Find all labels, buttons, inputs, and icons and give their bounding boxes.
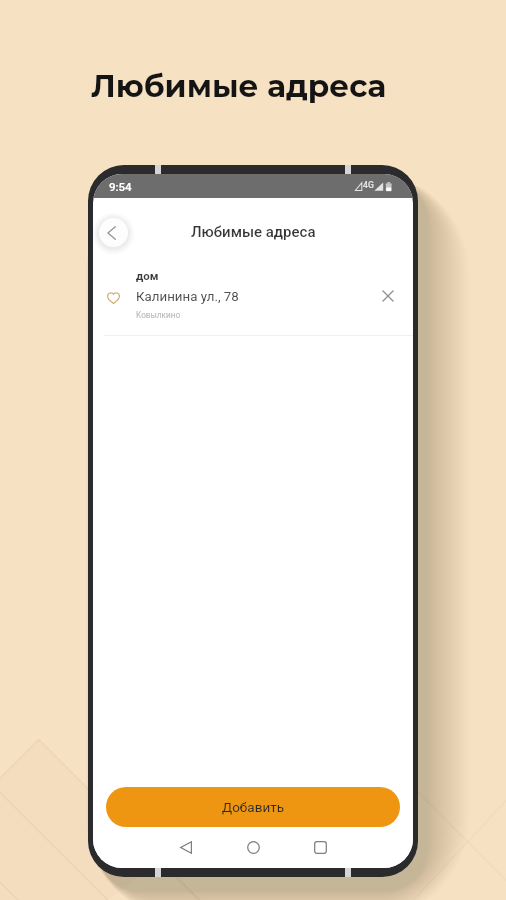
staticText: Калинина ул., 78 [136, 289, 239, 305]
staticText: 4G [363, 180, 374, 190]
staticText: Ковылкино [136, 310, 181, 320]
button[interactable]: Back [173, 834, 199, 860]
button[interactable]: Recent apps [307, 834, 333, 860]
staticText: Любимые адреса [191, 223, 316, 241]
staticText: дом [136, 269, 159, 282]
staticText: 9:54 [109, 180, 132, 193]
button[interactable]: Back [95, 214, 132, 251]
button[interactable]: Добавить [106, 787, 400, 827]
staticText: Добавить [222, 799, 284, 815]
button[interactable]: Remove address [376, 284, 400, 308]
button[interactable]: Home [240, 834, 266, 860]
staticText: Любимые адреса [91, 67, 387, 105]
button[interactable]: дом [93, 267, 413, 335]
